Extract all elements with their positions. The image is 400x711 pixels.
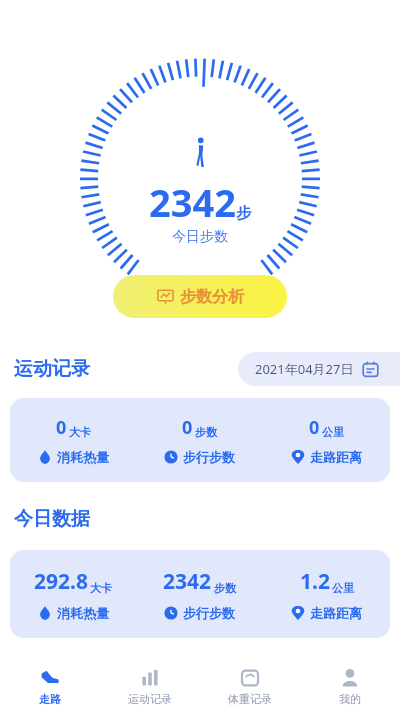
staticText: 292.8	[34, 567, 88, 596]
staticText: 步数分析	[180, 287, 244, 307]
staticText: 体重记录	[228, 692, 272, 706]
staticText: 步行步数	[183, 605, 235, 621]
staticText: 步数	[195, 425, 217, 439]
button[interactable]: 我的	[300, 662, 400, 711]
staticText: 消耗热量	[57, 449, 109, 465]
staticText: 大卡	[90, 581, 112, 595]
staticText: 步行步数	[183, 449, 235, 465]
button[interactable]: 292.8	[10, 550, 390, 638]
staticText: 2342	[163, 567, 212, 596]
staticText: 步数	[214, 581, 236, 595]
staticText: 步	[236, 204, 251, 223]
staticText: 走路距离	[310, 605, 362, 621]
staticText: 走路距离	[310, 449, 362, 465]
staticText: 消耗热量	[57, 605, 109, 621]
staticText: 今日数据	[14, 507, 90, 531]
staticText: 大卡	[69, 425, 91, 439]
staticText: 0	[309, 415, 320, 440]
button[interactable]: 运动记录	[100, 662, 200, 711]
button[interactable]: 0	[10, 398, 390, 482]
staticText: 今日步数	[172, 228, 228, 246]
staticText: 我的	[339, 692, 361, 706]
button[interactable]: 走路	[0, 662, 100, 711]
staticText: 2021年04月27日	[255, 360, 354, 378]
staticText: 2342	[149, 176, 236, 228]
staticText: 0	[56, 415, 67, 440]
staticText: 1.2	[300, 567, 330, 596]
staticText: 走路	[39, 692, 61, 706]
button[interactable]: 2021年04月27日	[238, 352, 400, 386]
button[interactable]: 步数分析	[113, 275, 287, 318]
staticText: 运动记录	[128, 692, 172, 706]
staticText: 运动记录	[14, 357, 90, 381]
staticText: 公里	[322, 425, 344, 439]
button[interactable]: 体重记录	[200, 662, 300, 711]
staticText: 公里	[332, 581, 354, 595]
staticText: 0	[182, 415, 193, 440]
